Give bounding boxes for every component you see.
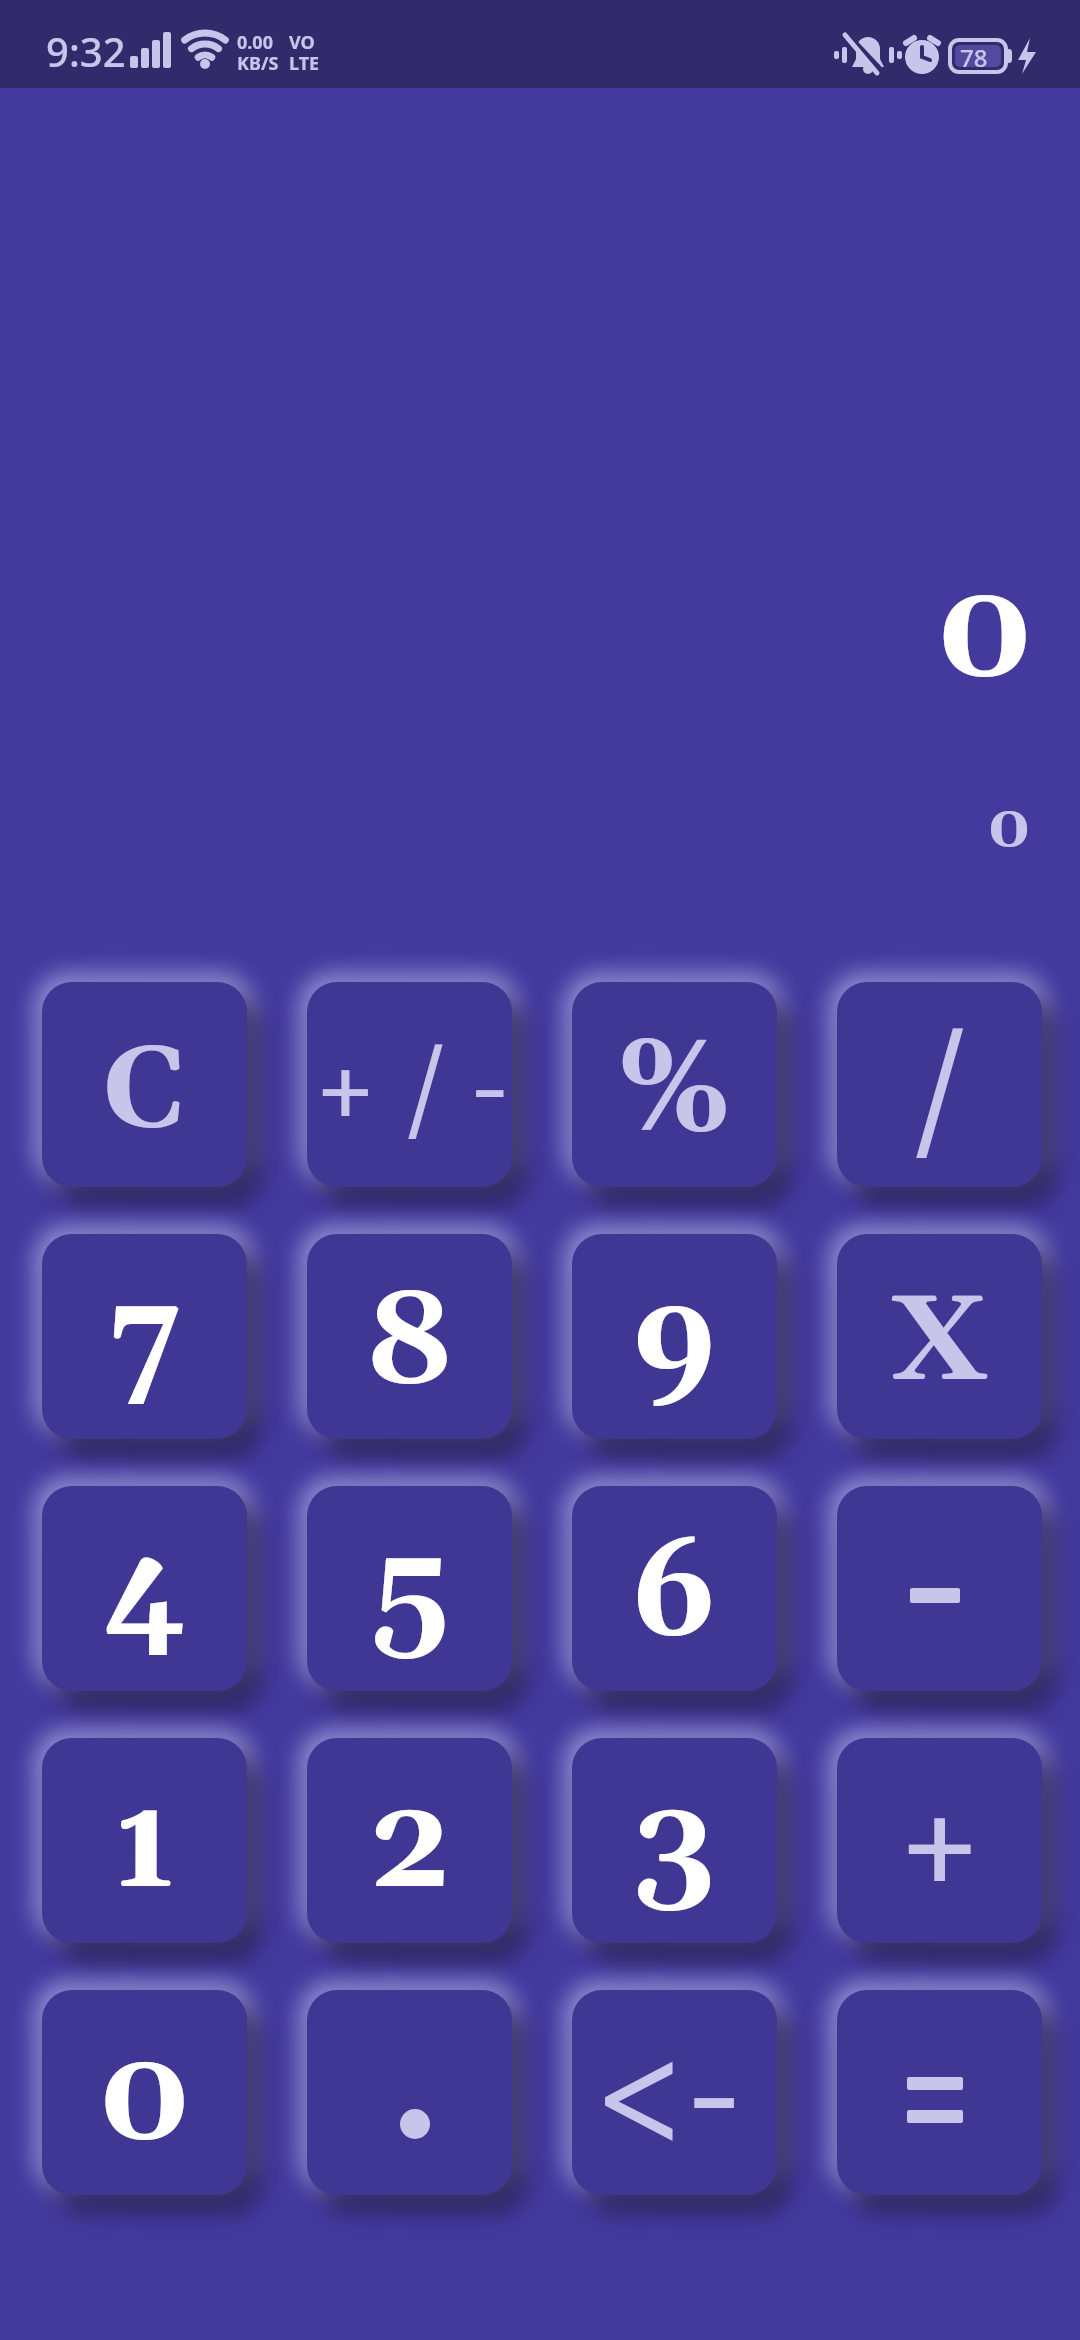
button[interactable]: 3 (572, 1738, 777, 1943)
button[interactable] (837, 1486, 1042, 1691)
button[interactable]: % (572, 982, 777, 1187)
button[interactable] (307, 1990, 512, 2195)
button[interactable] (837, 1990, 1042, 2195)
staticText: 0.00 KB/S (237, 30, 279, 76)
staticText: C (103, 1019, 186, 1165)
button[interactable]: C (42, 982, 247, 1187)
staticText: <- (591, 2012, 741, 2187)
button[interactable]: X (837, 1234, 1042, 1439)
staticText: 1 (113, 1765, 177, 1930)
staticText: 78 (960, 41, 988, 74)
button[interactable]: 2 (307, 1738, 512, 1943)
staticText: 5 (371, 1513, 449, 1678)
staticText: + / - (312, 1031, 508, 1152)
staticText: 0 (99, 2017, 191, 2182)
staticText: 6 (632, 1513, 717, 1678)
button[interactable]: 6 (572, 1486, 777, 1691)
staticText: 9:32 (46, 24, 126, 78)
staticText: X (891, 1268, 989, 1420)
button[interactable]: + / - (307, 982, 512, 1187)
button[interactable]: 0 (42, 1990, 247, 2195)
staticText: 4 (102, 1513, 187, 1678)
staticText: 9 (632, 1261, 717, 1426)
button[interactable]: / (837, 982, 1042, 1187)
staticText: VO LTE (289, 30, 320, 76)
staticText: 3 (634, 1765, 716, 1930)
button[interactable]: <- (572, 1990, 777, 2195)
staticText: + (894, 1765, 986, 1930)
staticText: 2 (369, 1765, 451, 1930)
staticText: 8 (366, 1261, 454, 1426)
button[interactable]: + (837, 1738, 1042, 1943)
staticText: / (909, 1009, 971, 1174)
button[interactable]: 9 (572, 1234, 777, 1439)
button[interactable]: 8 (307, 1234, 512, 1439)
button[interactable]: 5 (307, 1486, 512, 1691)
staticText: % (617, 1009, 732, 1174)
button[interactable]: 7 (42, 1234, 247, 1439)
staticText: 0 (937, 549, 1033, 722)
staticText: 0 (988, 790, 1031, 866)
staticText: 7 (108, 1261, 181, 1426)
button[interactable]: 4 (42, 1486, 247, 1691)
button[interactable]: 1 (42, 1738, 247, 1943)
